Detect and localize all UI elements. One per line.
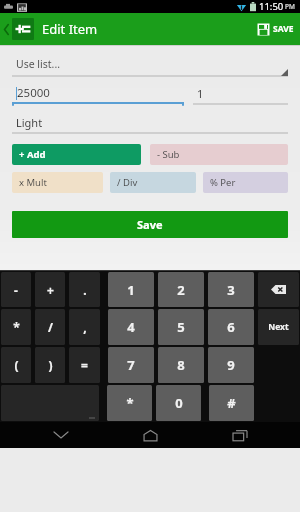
other: Save — [257, 23, 270, 36]
button[interactable]: Save — [12, 211, 288, 238]
button[interactable]: Home — [121, 422, 179, 448]
button[interactable]: 5 — [158, 309, 204, 345]
staticText: 2 — [177, 281, 185, 299]
button[interactable]: Next — [258, 309, 299, 345]
button[interactable]: 7 — [108, 347, 154, 383]
button[interactable]: / Div — [110, 172, 196, 193]
button[interactable]: x Mult — [12, 172, 103, 193]
button[interactable]: 9 — [208, 347, 254, 383]
button[interactable]: 3 — [208, 272, 254, 307]
button[interactable]: 0 — [156, 385, 201, 421]
staticText: = — [81, 357, 88, 373]
button[interactable]: * — [1, 309, 31, 345]
staticText: 1 — [197, 86, 204, 101]
button[interactable]: - — [1, 272, 31, 307]
staticText: 9 — [227, 356, 235, 374]
button[interactable]: Back — [32, 422, 90, 448]
button[interactable]: 4 — [108, 309, 154, 345]
staticText: Use list... — [16, 57, 61, 71]
staticText: Light — [16, 115, 43, 130]
staticText: ( — [14, 357, 19, 373]
staticText: PM — [285, 2, 295, 11]
button[interactable]: Recent apps — [211, 422, 269, 448]
staticText: # — [227, 394, 236, 412]
button[interactable]: 6 — [208, 309, 254, 345]
staticText: / — [48, 319, 53, 335]
button[interactable]: Delete — [258, 272, 299, 307]
other: Navigate up — [3, 23, 10, 36]
staticText: + — [47, 282, 54, 298]
button[interactable]: 1 — [193, 83, 288, 105]
staticText: Next — [268, 321, 289, 333]
staticText: 3 — [227, 281, 235, 299]
button[interactable]: Use list... — [12, 54, 288, 77]
staticText: ) — [48, 357, 53, 373]
button[interactable]: - Sub — [150, 144, 288, 165]
button[interactable]: 2 — [158, 272, 204, 307]
button[interactable]: 8 — [158, 347, 204, 383]
button[interactable]: % Per — [203, 172, 288, 193]
staticText: 4 — [127, 318, 135, 336]
staticText: + Add — [19, 148, 46, 161]
staticText: 5 — [177, 318, 185, 336]
staticText: Save — [137, 217, 163, 232]
button[interactable]: + Add — [12, 144, 141, 165]
button[interactable]: * — [107, 385, 152, 421]
button[interactable]: / — [35, 309, 65, 345]
staticText: 6 — [227, 318, 235, 336]
staticText: 25000 — [17, 85, 50, 101]
staticText: 0 — [175, 394, 183, 412]
staticText: 8 — [177, 356, 185, 374]
button[interactable]: . — [69, 272, 100, 307]
button[interactable]: ( — [1, 347, 31, 383]
staticText: * — [126, 394, 134, 412]
staticText: * — [13, 319, 20, 335]
button[interactable]: Light — [12, 112, 288, 134]
button[interactable]: , — [69, 309, 100, 345]
button[interactable]: ) — [35, 347, 65, 383]
button[interactable]: 1 — [108, 272, 154, 307]
button[interactable]: 25000 — [12, 83, 184, 105]
staticText: 11:50 — [259, 0, 284, 13]
staticText: % Per — [210, 176, 236, 189]
staticText: x Mult — [19, 176, 47, 189]
button[interactable]: Save — [251, 13, 300, 45]
button[interactable]: = — [69, 347, 100, 383]
staticText: SAVE — [273, 23, 294, 35]
staticText: . — [83, 282, 87, 298]
staticText: - — [14, 282, 18, 298]
button[interactable]: + — [35, 272, 65, 307]
staticText: - Sub — [157, 148, 180, 161]
staticText: 1 — [127, 281, 135, 299]
staticText: , — [83, 319, 87, 335]
button[interactable]: Navigate up — [0, 13, 38, 45]
staticText: Edit Item — [42, 20, 98, 38]
staticText: / Div — [117, 176, 138, 189]
button[interactable]: # — [209, 385, 254, 421]
staticText: 7 — [127, 356, 135, 374]
